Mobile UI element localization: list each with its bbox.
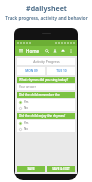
button[interactable]: Profile bbox=[51, 47, 59, 55]
staticText: MON 09 bbox=[25, 69, 38, 73]
staticText: TUE 10 bbox=[56, 69, 67, 73]
button[interactable]: No bbox=[17, 126, 75, 132]
button[interactable]: Yes bbox=[17, 120, 75, 126]
button[interactable]: Your answer bbox=[17, 84, 75, 90]
staticText: What rhymes did you sing today? bbox=[19, 78, 69, 82]
staticText: Home bbox=[26, 48, 40, 54]
staticText: Did the child enjoy the rhymes/music? bbox=[19, 114, 73, 118]
button[interactable]: Did the child enjoy the rhymes/music? bbox=[17, 113, 75, 119]
button[interactable]: MON 09 bbox=[17, 67, 45, 75]
staticText: Yes bbox=[24, 121, 29, 125]
button[interactable]: SAVE bbox=[17, 166, 45, 172]
staticText: No bbox=[24, 106, 28, 110]
button[interactable]: SAVE & EXIT bbox=[47, 166, 75, 172]
button[interactable]: What rhymes did you sing today? bbox=[17, 77, 75, 83]
button[interactable]: TUE 10 bbox=[47, 67, 75, 75]
button[interactable]: No bbox=[17, 105, 75, 111]
button[interactable]: Yes bbox=[17, 99, 75, 105]
staticText: SAVE & EXIT bbox=[52, 167, 70, 171]
button[interactable]: Notifications bbox=[59, 47, 67, 55]
button[interactable]: Search bbox=[43, 47, 51, 55]
staticText: Yes bbox=[24, 100, 29, 104]
staticText: Track progress, activity and behavior bbox=[5, 15, 88, 21]
staticText: #dailysheet bbox=[26, 4, 67, 14]
staticText: Activity Progress bbox=[33, 59, 60, 64]
staticText: No bbox=[24, 127, 28, 131]
staticText: Your answer bbox=[19, 85, 36, 89]
button[interactable]: Menu bbox=[17, 47, 25, 55]
button[interactable]: More options bbox=[67, 47, 75, 55]
button[interactable]: Did the child remember the rhymes? bbox=[17, 92, 75, 98]
staticText: SAVE bbox=[27, 167, 35, 171]
staticText: Did the child remember the rhymes? bbox=[19, 93, 73, 97]
button[interactable]: Activity Progress bbox=[17, 58, 75, 65]
